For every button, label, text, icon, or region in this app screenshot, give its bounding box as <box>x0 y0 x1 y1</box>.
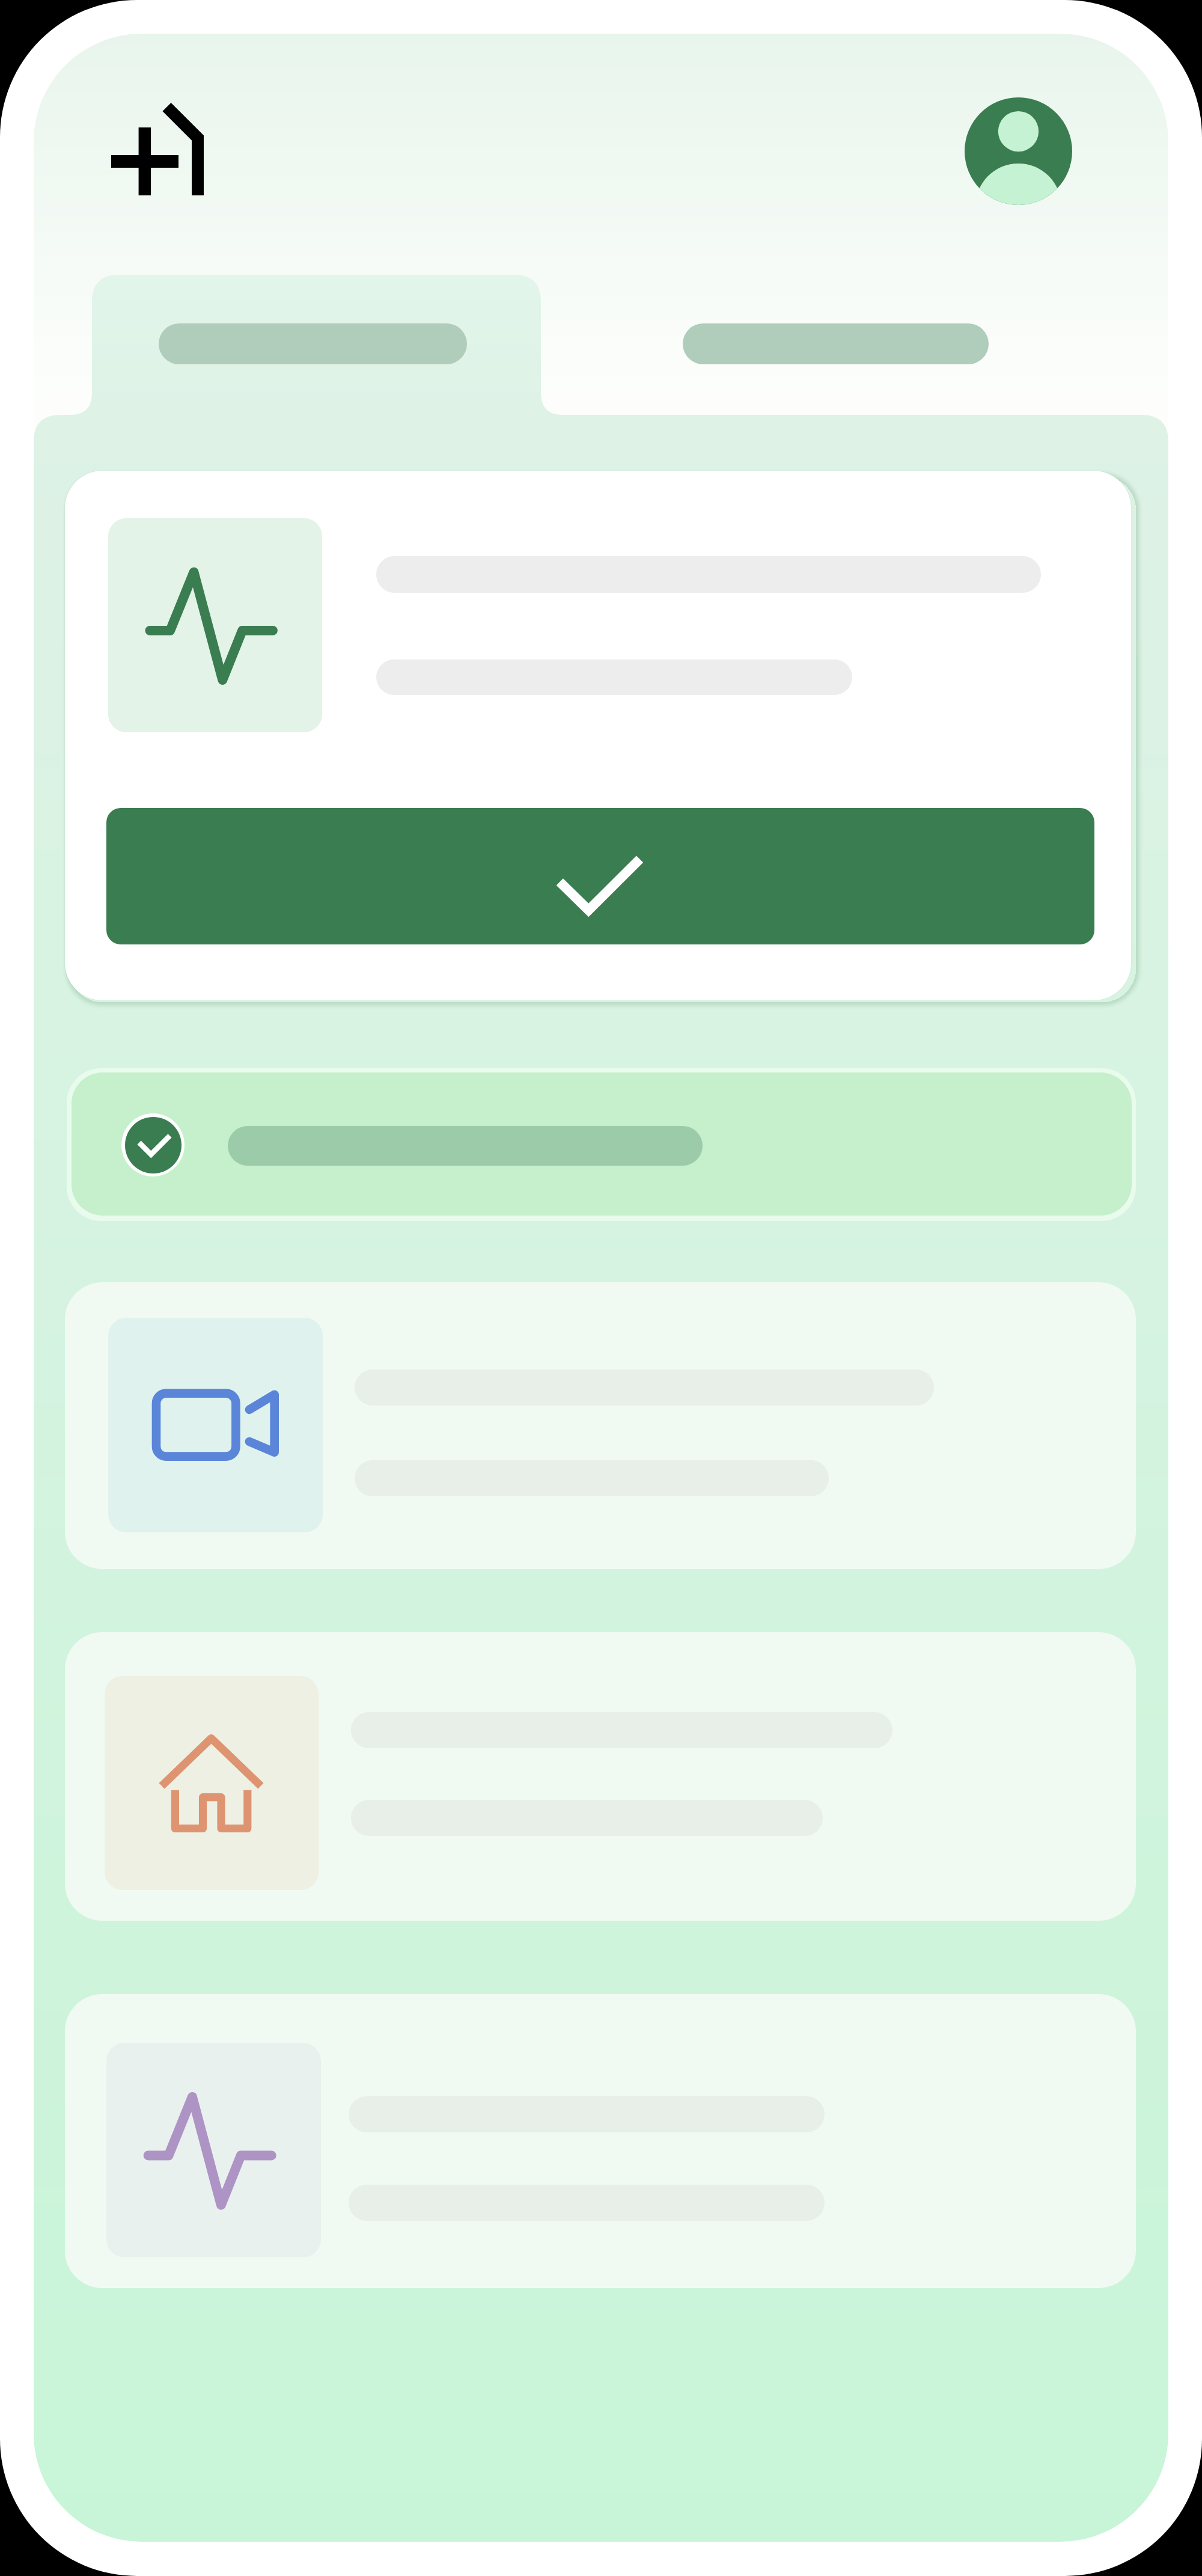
button[interactable] <box>65 1632 1136 1921</box>
button[interactable]: Confirm <box>65 471 1131 1000</box>
button[interactable]: Overview tab, selected <box>92 275 541 422</box>
button[interactable] <box>72 1072 1132 1216</box>
button[interactable]: Activity tab <box>634 275 1083 422</box>
button[interactable]: Profile <box>965 97 1072 205</box>
button[interactable] <box>65 1282 1136 1569</box>
button[interactable]: Add home <box>103 102 208 207</box>
button[interactable]: Confirm <box>106 808 1094 944</box>
button[interactable] <box>65 1994 1136 2288</box>
